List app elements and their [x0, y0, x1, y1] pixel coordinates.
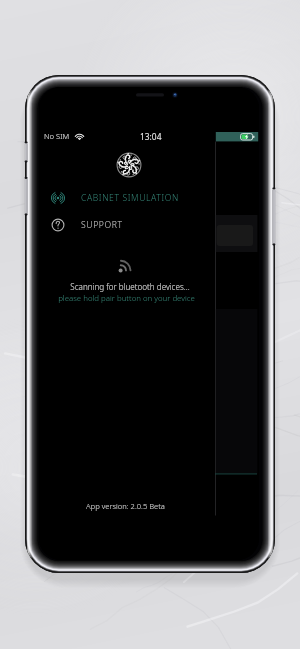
- staticText: Scanning for bluetooth devices...: [70, 281, 190, 292]
- staticText: SUPPORT: [81, 219, 123, 231]
- other: Support: [50, 218, 66, 232]
- staticText: 13:04: [140, 131, 162, 141]
- staticText: CABINET SIMULATION: [81, 192, 179, 204]
- staticText: App version: 2.0.5 Beta: [86, 501, 165, 511]
- button[interactable]: Cabinet simulation: [39, 190, 215, 206]
- other: App logo: [116, 152, 142, 178]
- other: Cabinet simulation: [50, 192, 66, 204]
- staticText: No SIM: [44, 131, 70, 141]
- button[interactable]: Support: [39, 217, 215, 233]
- staticText: please hold pair button on your device: [58, 293, 195, 304]
